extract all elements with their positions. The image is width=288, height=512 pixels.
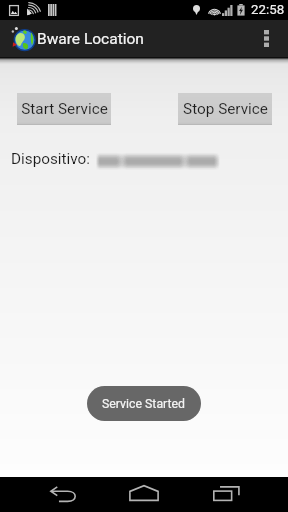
- staticText: Bware Location: [37, 30, 144, 48]
- button[interactable]: More options: [248, 20, 284, 57]
- button[interactable]: Back: [36, 477, 92, 512]
- staticText: Dispositivo:: [11, 150, 91, 168]
- button[interactable]: Start Service: [17, 93, 111, 125]
- staticText: Service Started: [102, 397, 186, 411]
- button[interactable]: Stop Service: [178, 93, 272, 125]
- staticText: 22:58: [251, 2, 285, 18]
- staticText: Stop Service: [183, 100, 268, 118]
- staticText: Start Service: [21, 100, 108, 118]
- button[interactable]: Home: [116, 477, 172, 512]
- button[interactable]: Recent apps: [198, 477, 254, 512]
